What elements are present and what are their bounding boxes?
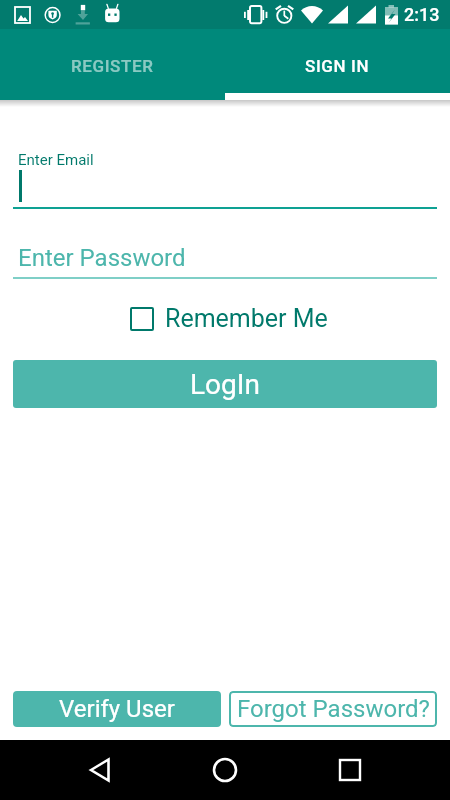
- staticText: Verify User: [59, 695, 175, 723]
- button[interactable]: REGISTER: [0, 29, 225, 100]
- button[interactable]: Back: [76, 746, 124, 794]
- button[interactable]: SIGN IN: [225, 29, 450, 100]
- button[interactable]: Verify User: [13, 691, 221, 727]
- staticText: SIGN IN: [305, 56, 370, 76]
- button[interactable]: LogIn: [13, 360, 437, 408]
- button[interactable]: Remember Me: [130, 304, 328, 333]
- button[interactable]: Enter Password: [13, 241, 437, 279]
- staticText: REGISTER: [71, 56, 154, 76]
- button[interactable]: Home: [201, 746, 249, 794]
- button[interactable]: Enter Email: [13, 145, 437, 209]
- staticText: 2:13: [404, 4, 440, 25]
- staticText: Forgot Password?: [237, 695, 430, 723]
- button[interactable]: Recent apps: [326, 746, 374, 794]
- staticText: Remember Me: [165, 304, 328, 333]
- staticText: LogIn: [190, 368, 260, 401]
- staticText: Enter Password: [18, 244, 186, 272]
- staticText: Enter Email: [18, 151, 94, 169]
- button[interactable]: Forgot Password?: [229, 691, 437, 727]
